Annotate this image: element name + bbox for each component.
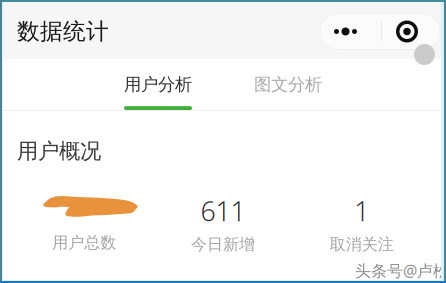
staticText: 今日新增 [191,235,255,254]
staticText: 611 [200,193,245,229]
button[interactable]: More options [320,13,440,49]
button[interactable]: 用户分析 [124,51,192,118]
staticText: 图文分析 [254,74,322,95]
staticText: 用户分析 [124,74,192,95]
staticText: 取消关注 [330,235,394,254]
staticText: 头条号@卢松松 [355,260,446,281]
staticText: 用户总数 [52,233,116,253]
button[interactable]: 图文分析 [254,51,322,103]
staticText: 数据统计 [17,18,109,45]
staticText: 1 [354,193,369,229]
staticText: 用户概况 [17,138,101,164]
